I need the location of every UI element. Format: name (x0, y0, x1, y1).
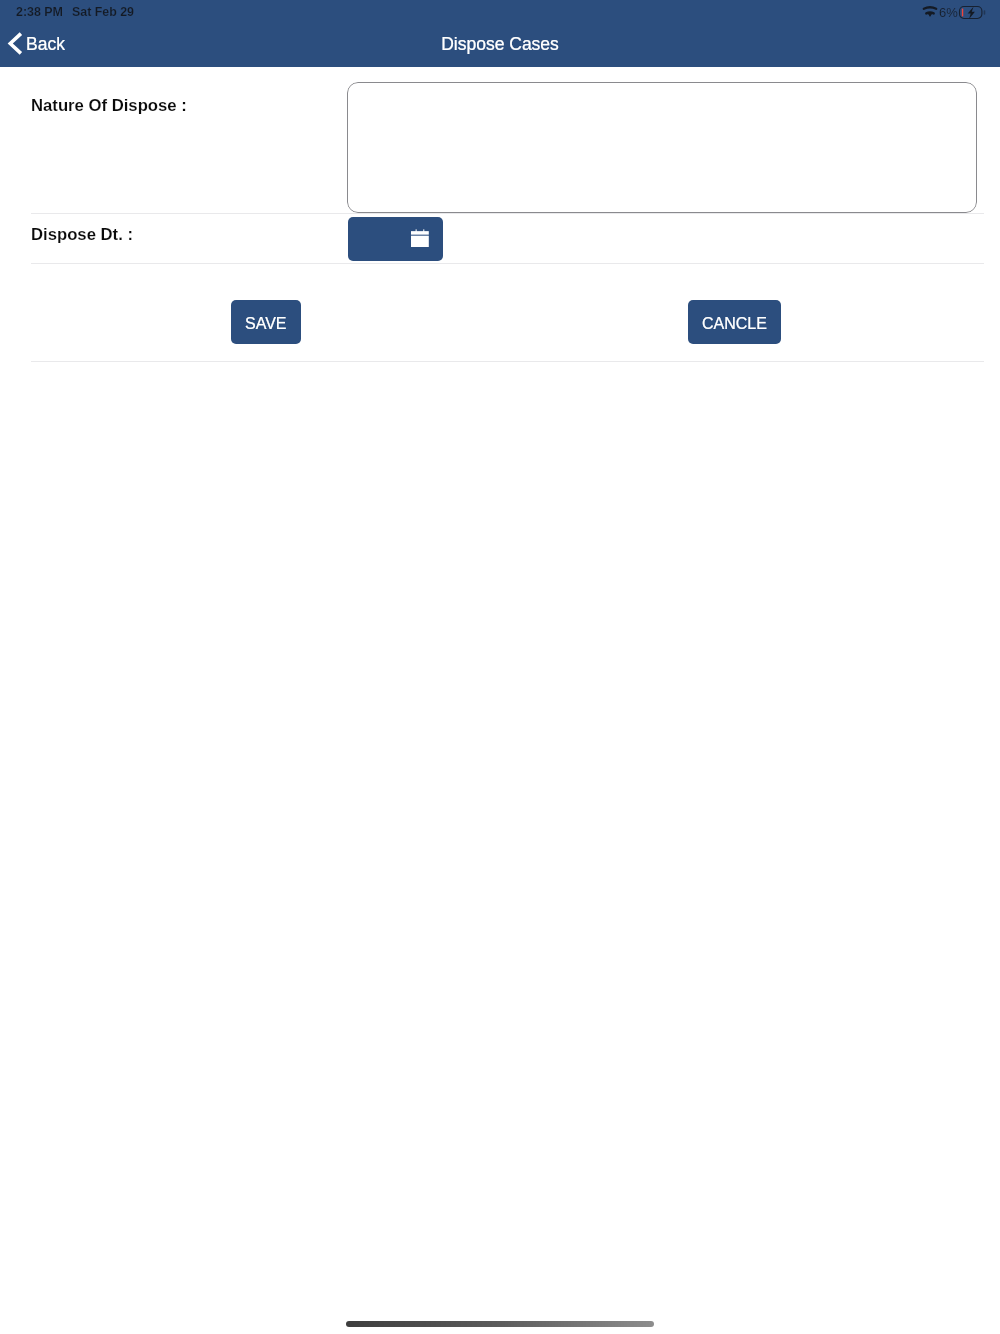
staticText: 6% (939, 5, 958, 20)
staticText: Sat Feb 29 (72, 5, 134, 19)
staticText: SAVE (245, 315, 287, 333)
button[interactable]: Nature of dispose input (347, 82, 977, 213)
button[interactable]: SAVE (231, 300, 301, 344)
button[interactable]: Back (0, 27, 75, 60)
staticText: Dispose Cases (441, 34, 559, 54)
staticText: Back (26, 34, 65, 54)
staticText: Nature Of Dispose : (31, 96, 187, 115)
button[interactable]: CANCLE (688, 300, 781, 344)
staticText: CANCLE (702, 315, 767, 333)
staticText: 2:38 PM (16, 5, 63, 19)
button[interactable]: Pick dispose date (348, 217, 443, 261)
staticText: Dispose Dt. : (31, 225, 133, 244)
